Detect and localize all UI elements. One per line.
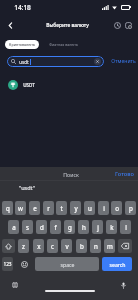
staticText: t xyxy=(60,204,63,212)
staticText: Фиатная валюта xyxy=(49,42,78,47)
staticText: j xyxy=(97,223,99,231)
staticText: Отменить xyxy=(111,58,136,65)
staticText: s xyxy=(26,223,29,231)
button[interactable]: Back xyxy=(1,16,19,34)
staticText: o xyxy=(115,204,119,212)
staticText: b xyxy=(80,242,84,250)
button[interactable]: w xyxy=(15,201,26,215)
staticText: d xyxy=(40,223,44,231)
button[interactable]: q xyxy=(2,201,13,215)
button[interactable]: Transaction history xyxy=(109,17,125,33)
button[interactable]: search xyxy=(102,257,132,271)
button[interactable]: Scan QR code xyxy=(120,17,136,33)
button[interactable]: space xyxy=(35,257,99,271)
button[interactable]: k xyxy=(106,220,117,234)
staticText: m xyxy=(107,242,113,250)
staticText: Готово xyxy=(115,170,134,178)
staticText: usdt xyxy=(19,59,29,65)
staticText: Выберите валюту xyxy=(46,22,89,29)
button[interactable]: Готово xyxy=(112,167,137,180)
staticText: k xyxy=(110,223,114,231)
button[interactable]: u xyxy=(84,201,95,215)
button[interactable]: g xyxy=(64,220,75,234)
staticText: c xyxy=(51,242,54,250)
staticText: Поиск xyxy=(63,171,79,178)
staticText: USDT xyxy=(23,82,35,88)
staticText: l xyxy=(125,223,127,231)
staticText: "usdt" xyxy=(19,184,35,191)
button[interactable]: z xyxy=(18,239,29,253)
button[interactable]: e xyxy=(29,201,40,215)
staticText: q xyxy=(6,204,10,212)
staticText: f xyxy=(54,223,57,231)
staticText: e xyxy=(33,204,37,212)
button[interactable]: y xyxy=(70,201,81,215)
staticText: y xyxy=(74,204,78,212)
staticText: v xyxy=(65,242,69,250)
button[interactable]: f xyxy=(50,220,61,234)
button[interactable]: Clear text xyxy=(94,58,101,65)
button[interactable]: o xyxy=(111,201,122,215)
button[interactable]: a xyxy=(8,220,19,234)
staticText: 14:18 xyxy=(14,3,31,12)
staticText: h xyxy=(82,223,86,231)
button[interactable]: 123 xyxy=(2,257,13,271)
button[interactable]: b xyxy=(76,239,87,253)
button[interactable]: m xyxy=(104,239,115,253)
staticText: i xyxy=(103,204,105,212)
button[interactable]: r xyxy=(43,201,54,215)
button[interactable]: Криптовалюта xyxy=(5,40,39,49)
staticText: space xyxy=(60,261,75,268)
button[interactable]: v xyxy=(61,239,72,253)
button[interactable]: usdt xyxy=(7,56,104,67)
button[interactable]: i xyxy=(98,201,109,215)
button[interactable]: t xyxy=(56,201,67,215)
button[interactable]: l xyxy=(120,220,131,234)
staticText: u xyxy=(88,204,92,212)
button[interactable]: h xyxy=(78,220,89,234)
staticText: Криптовалюта xyxy=(9,42,35,47)
button[interactable]: n xyxy=(90,239,101,253)
button[interactable]: j xyxy=(92,220,103,234)
button[interactable]: Backspace xyxy=(118,239,132,253)
button[interactable]: p xyxy=(125,201,136,215)
button[interactable]: Change language xyxy=(9,279,21,291)
button[interactable]: USDT xyxy=(0,75,138,95)
staticText: z xyxy=(22,242,25,250)
button[interactable]: Фиатная валюта xyxy=(44,40,83,49)
button[interactable]: c xyxy=(47,239,58,253)
button[interactable]: Отменить xyxy=(109,56,138,67)
button[interactable]: d xyxy=(36,220,47,234)
button[interactable]: Voice input xyxy=(117,279,129,291)
staticText: n xyxy=(94,242,98,250)
staticText: g xyxy=(68,223,72,231)
staticText: a xyxy=(12,223,16,231)
staticText: 123 xyxy=(3,261,12,268)
button[interactable]: Emoji xyxy=(19,257,30,271)
staticText: x xyxy=(37,242,41,250)
button[interactable]: s xyxy=(22,220,33,234)
button[interactable]: Shift xyxy=(2,239,15,253)
staticText: p xyxy=(129,204,133,212)
staticText: w xyxy=(18,204,23,212)
button[interactable]: "usdt" xyxy=(16,181,38,193)
button[interactable]: x xyxy=(33,239,44,253)
staticText: r xyxy=(47,204,50,212)
staticText: search xyxy=(109,261,126,268)
